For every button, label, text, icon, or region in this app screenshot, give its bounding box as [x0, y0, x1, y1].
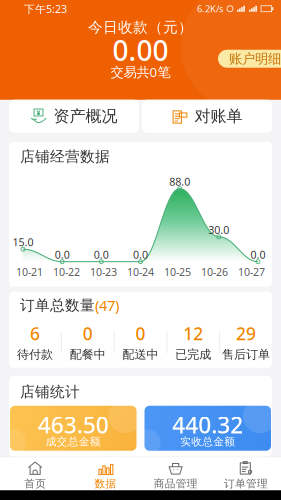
button[interactable]: 0: [115, 322, 166, 362]
staticText: 0.00: [112, 32, 168, 69]
staticText: 15.0: [12, 235, 33, 249]
staticText: 成交总金额: [46, 435, 101, 448]
staticText: 29: [236, 322, 256, 345]
button[interactable]: 463.50: [10, 406, 136, 451]
staticText: 463.50: [38, 410, 109, 440]
staticText: 已完成: [175, 347, 211, 362]
staticText: 10-26: [201, 265, 228, 279]
staticText: 实收总金额: [180, 435, 235, 448]
staticText: 今日收款（元）: [88, 18, 193, 36]
staticText: 0: [83, 322, 93, 345]
button[interactable]: 29: [220, 322, 272, 362]
staticText: 10-24: [127, 265, 154, 279]
staticText: 0.0: [250, 248, 265, 262]
staticText: 10-25: [164, 265, 191, 279]
staticText: 10-27: [238, 265, 265, 279]
button[interactable]: 商品管理: [140, 457, 211, 490]
staticText: 账户明细: [229, 51, 281, 67]
staticText: 下午5:23: [24, 2, 67, 16]
button[interactable]: 12: [167, 322, 219, 362]
staticText: 0.0: [133, 248, 148, 262]
staticText: 商品管理: [154, 477, 198, 490]
staticText: 交易共0笔: [110, 63, 170, 81]
staticText: 6.2K/s: [197, 3, 223, 15]
button[interactable]: 0: [62, 322, 114, 362]
staticText: 配送中: [122, 347, 158, 362]
staticText: 88.0: [169, 175, 190, 189]
staticText: 数据: [94, 477, 116, 490]
button[interactable]: 首页: [0, 457, 70, 490]
staticText: (47): [95, 296, 119, 315]
staticText: 10-21: [16, 265, 43, 279]
staticText: 店铺经营数据: [20, 148, 110, 166]
staticText: 店铺统计: [20, 383, 80, 401]
button[interactable]: 数据: [70, 457, 140, 490]
staticText: 30.0: [208, 223, 229, 237]
button[interactable]: 440.32: [144, 406, 271, 451]
staticText: 0.0: [55, 248, 70, 262]
staticText: 订单管理: [224, 477, 268, 490]
staticText: 12: [183, 322, 203, 345]
staticText: 6: [30, 322, 40, 345]
staticText: 待付款: [17, 347, 53, 362]
button[interactable]: 6: [9, 322, 61, 362]
button[interactable]: 订单管理: [211, 457, 281, 490]
staticText: 10-22: [53, 265, 80, 279]
staticText: 订单总数量: [20, 296, 95, 314]
button[interactable]: 资产概况: [9, 100, 139, 133]
button[interactable]: 账户明细: [218, 50, 281, 68]
staticText: 0.0: [94, 248, 109, 262]
staticText: 10-23: [90, 265, 117, 279]
staticText: 售后订单: [222, 347, 270, 362]
staticText: 资产概况: [53, 106, 117, 126]
button[interactable]: 对账单: [142, 100, 272, 133]
staticText: 对账单: [194, 106, 242, 126]
staticText: 0: [135, 322, 145, 345]
staticText: 配餐中: [70, 347, 106, 362]
staticText: 首页: [24, 477, 46, 490]
staticText: 440.32: [172, 410, 243, 440]
